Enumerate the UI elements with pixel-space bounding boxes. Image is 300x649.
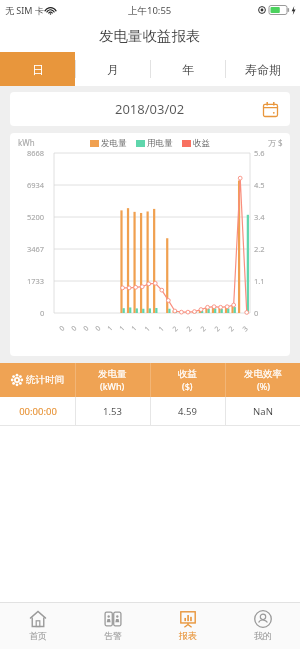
staticText: 14 xyxy=(129,322,141,334)
button[interactable]: 报表 xyxy=(150,602,225,649)
staticText: 30 xyxy=(240,322,252,334)
button[interactable]: 发电效率 xyxy=(225,363,300,397)
staticText: 报表 xyxy=(179,630,197,641)
staticText: 发电效率 xyxy=(244,368,282,380)
button[interactable]: 发电量 xyxy=(75,363,150,397)
staticText: 收益 xyxy=(193,138,210,149)
staticText: 2.2 xyxy=(254,244,265,254)
staticText: 20 xyxy=(170,322,182,334)
button[interactable]: 年 xyxy=(150,52,225,86)
staticText: 收益 xyxy=(178,368,197,380)
staticText: 8668 xyxy=(27,148,45,158)
staticText: 3467 xyxy=(27,244,45,254)
staticText: 0 xyxy=(40,308,45,318)
other: Settings xyxy=(12,375,22,385)
staticText: 08 xyxy=(93,322,105,334)
staticText: (kWh) xyxy=(100,380,125,392)
staticText: 28 xyxy=(226,322,238,334)
staticText: 上午10:55 xyxy=(128,4,172,17)
staticText: 5.6 xyxy=(254,148,265,158)
staticText: 4.5 xyxy=(254,180,265,190)
staticText: 统计时间 xyxy=(26,374,64,386)
staticText: 1733 xyxy=(27,276,45,286)
staticText: 万 $ xyxy=(268,137,283,148)
staticText: kWh xyxy=(18,137,35,148)
staticText: 月 xyxy=(107,62,119,77)
staticText: (%) xyxy=(257,380,270,392)
staticText: 12 xyxy=(117,322,129,334)
staticText: 04 xyxy=(69,322,81,334)
button[interactable]: Settings xyxy=(0,363,75,397)
staticText: 26 xyxy=(212,322,224,334)
staticText: 首页 xyxy=(29,630,47,641)
staticText: 1.53 xyxy=(103,405,122,418)
staticText: 16 xyxy=(142,322,154,334)
staticText: 10 xyxy=(105,322,117,334)
staticText: 18 xyxy=(156,322,168,334)
staticText: 6934 xyxy=(27,180,45,190)
staticText: 02 xyxy=(57,322,69,334)
staticText: 寿命期 xyxy=(245,62,281,77)
button[interactable]: 日 xyxy=(0,52,75,86)
staticText: 5200 xyxy=(27,212,45,222)
button[interactable]: 2018/03/02 xyxy=(10,92,290,126)
staticText: 无 SIM 卡 xyxy=(5,4,44,16)
staticText: 发电量收益报表 xyxy=(99,27,201,45)
staticText: 2018/03/02 xyxy=(115,100,185,118)
staticText: 24 xyxy=(198,322,210,334)
staticText: 4.59 xyxy=(178,405,197,418)
staticText: 3.4 xyxy=(254,212,265,222)
staticText: 我的 xyxy=(254,630,272,641)
button[interactable]: 我的 xyxy=(225,602,300,649)
staticText: 日 xyxy=(32,62,44,77)
button[interactable]: 寿命期 xyxy=(225,52,300,86)
button[interactable]: 收益 xyxy=(150,363,225,397)
staticText: 发电量 xyxy=(98,368,127,380)
staticText: 0 xyxy=(254,308,259,318)
staticText: 用电量 xyxy=(147,138,173,149)
staticText: ($) xyxy=(182,380,193,392)
staticText: 22 xyxy=(184,322,196,334)
button[interactable]: 00:00:00 xyxy=(0,397,300,425)
staticText: 发电量 xyxy=(101,138,127,149)
staticText: 00:00:00 xyxy=(19,405,57,418)
button[interactable]: 月 xyxy=(75,52,150,86)
staticText: 1.1 xyxy=(254,276,265,286)
button[interactable]: 首页 xyxy=(0,602,75,649)
staticText: 告警 xyxy=(104,630,122,641)
button[interactable]: 告警 xyxy=(75,602,150,649)
other: Pick date xyxy=(263,102,278,117)
staticText: 06 xyxy=(81,322,93,334)
staticText: 年 xyxy=(182,62,194,77)
staticText: NaN xyxy=(253,405,273,418)
